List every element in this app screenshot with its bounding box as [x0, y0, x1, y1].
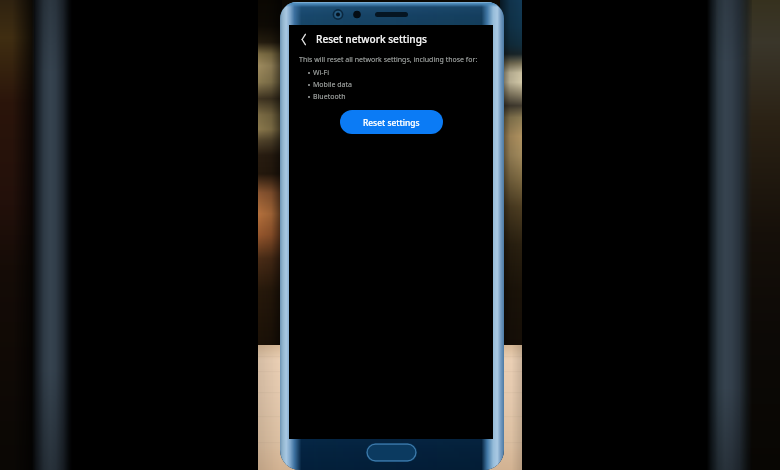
button[interactable]: Reset settings — [340, 110, 443, 134]
staticText: This will reset all network settings, in… — [299, 55, 478, 65]
staticText: Bluetooth — [313, 92, 346, 102]
button[interactable]: Back — [289, 28, 316, 50]
staticText: Mobile data — [313, 80, 352, 90]
staticText: Reset settings — [363, 117, 420, 128]
button[interactable]: Back — [289, 28, 493, 50]
staticText: Wi-Fi — [313, 68, 330, 78]
staticText: Reset network settings — [316, 32, 427, 46]
